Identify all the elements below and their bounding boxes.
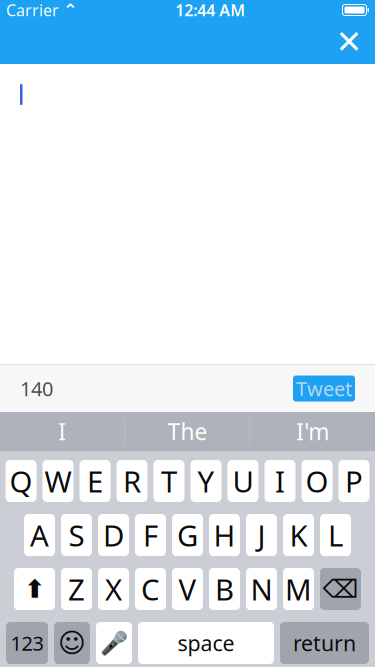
button[interactable]: V <box>172 568 203 610</box>
button[interactable]: T <box>153 460 184 502</box>
button[interactable]: Shift <box>14 568 55 610</box>
button[interactable]: O <box>301 460 332 502</box>
staticText: R <box>123 461 141 500</box>
button[interactable]: H <box>209 514 240 556</box>
staticText: V <box>178 569 196 608</box>
staticText: The <box>167 416 207 446</box>
button[interactable]: X <box>98 568 129 610</box>
staticText: T <box>161 461 177 500</box>
button[interactable]: return <box>280 622 369 664</box>
staticText: K <box>289 515 307 554</box>
button[interactable]: Close <box>327 20 371 64</box>
button[interactable]: P <box>338 460 369 502</box>
button[interactable]: Delete <box>320 568 361 610</box>
button[interactable]: S <box>61 514 92 556</box>
button[interactable]: space <box>138 622 274 664</box>
staticText: ✕ <box>335 24 362 60</box>
button[interactable]: U <box>227 460 258 502</box>
button[interactable]: Emoji <box>54 622 90 664</box>
staticText: O <box>305 461 328 500</box>
staticText: H <box>213 515 235 554</box>
button[interactable]: Z <box>61 568 92 610</box>
staticText: X <box>105 569 122 608</box>
button[interactable]: L <box>320 514 351 556</box>
staticText: 123 <box>10 630 43 656</box>
staticText: W <box>44 461 71 500</box>
staticText: Y <box>197 461 214 500</box>
button[interactable]: K <box>283 514 314 556</box>
button[interactable]: The <box>125 412 250 451</box>
staticText: ⬆ <box>24 575 45 603</box>
button[interactable]: D <box>98 514 129 556</box>
button[interactable]: I'm <box>250 412 375 451</box>
staticText: N <box>250 569 272 608</box>
button[interactable]: Tweet <box>293 375 355 401</box>
staticText: I'm <box>296 416 329 446</box>
button[interactable]: B <box>209 568 240 610</box>
button[interactable]: W <box>42 460 73 502</box>
button[interactable]: M <box>283 568 314 610</box>
button[interactable]: C <box>135 568 166 610</box>
button[interactable]: I <box>264 460 295 502</box>
staticText: 12:44 AM <box>175 0 245 21</box>
button[interactable]: E <box>79 460 110 502</box>
staticText: Z <box>68 569 85 608</box>
staticText: A <box>30 515 49 554</box>
staticText: D <box>103 515 124 554</box>
button[interactable]: 123 <box>6 622 48 664</box>
staticText: J <box>257 515 265 554</box>
staticText: S <box>68 515 84 554</box>
staticText: ☺ <box>58 628 86 658</box>
staticText: F <box>143 515 158 554</box>
button[interactable]: Q <box>5 460 36 502</box>
staticText: I <box>275 461 285 500</box>
staticText: return <box>293 629 356 657</box>
staticText: U <box>232 461 253 500</box>
staticText: Tweet <box>296 375 352 402</box>
staticText: I <box>58 416 66 446</box>
staticText: G <box>177 515 198 554</box>
staticText: 🎤 <box>100 630 128 656</box>
button[interactable]: J <box>246 514 277 556</box>
staticText: M <box>285 569 312 608</box>
staticText: P <box>345 461 363 500</box>
staticText: ⌃ <box>63 0 78 20</box>
button[interactable]: Y <box>190 460 221 502</box>
staticText: space <box>177 629 234 657</box>
button[interactable]: R <box>116 460 147 502</box>
staticText: C <box>141 569 160 608</box>
staticText: ⌫ <box>322 575 358 603</box>
staticText: B <box>215 569 234 608</box>
staticText: L <box>328 515 343 554</box>
staticText: 140 <box>20 375 53 402</box>
staticText: E <box>87 461 103 500</box>
button[interactable]: Dictation <box>96 622 132 664</box>
button[interactable]: G <box>172 514 203 556</box>
button[interactable]: A <box>24 514 55 556</box>
button[interactable]: N <box>246 568 277 610</box>
staticText: Carrier <box>6 0 59 21</box>
staticText: Q <box>9 461 32 500</box>
button[interactable]: I <box>0 412 125 451</box>
button[interactable]: F <box>135 514 166 556</box>
